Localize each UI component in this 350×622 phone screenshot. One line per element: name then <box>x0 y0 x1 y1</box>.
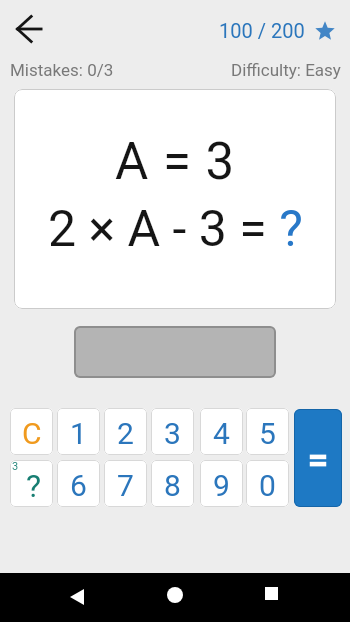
staticText: ? <box>26 467 42 505</box>
button[interactable]: 9 <box>200 460 243 507</box>
staticText: 0 <box>259 468 276 503</box>
button[interactable] <box>74 326 276 378</box>
button[interactable]: C <box>10 408 53 455</box>
button[interactable]: 2 <box>104 408 147 455</box>
button[interactable]: 5 <box>246 408 289 455</box>
staticText: 4 <box>213 416 230 451</box>
button[interactable]: 4 <box>200 408 243 455</box>
button[interactable]: 8 <box>151 460 194 507</box>
staticText: C <box>22 416 42 451</box>
staticText: 2 <box>117 416 134 451</box>
button[interactable]: ? <box>10 460 53 507</box>
button[interactable] <box>13 12 47 46</box>
button[interactable] <box>66 587 86 607</box>
staticText: 100 / 200 <box>219 19 305 42</box>
button[interactable] <box>294 409 342 507</box>
button[interactable]: 7 <box>104 460 147 507</box>
staticText: 6 <box>70 468 87 503</box>
staticText: 7 <box>117 468 134 503</box>
staticText: 9 <box>213 468 230 503</box>
button[interactable]: 6 <box>57 460 100 507</box>
button[interactable]: 0 <box>246 460 289 507</box>
button[interactable]: 3 <box>151 408 194 455</box>
button[interactable] <box>167 587 183 603</box>
staticText: 8 <box>164 468 181 503</box>
staticText: 3 <box>164 416 181 451</box>
staticText: 1 <box>70 416 87 451</box>
staticText: 2 × A - 3 = ? <box>48 200 303 259</box>
staticText: 3 <box>12 460 19 473</box>
staticText: A = 3 <box>115 132 236 192</box>
button[interactable]: 1 <box>57 408 100 455</box>
staticText: Difficulty: Easy <box>231 60 341 80</box>
staticText: 5 <box>259 416 276 451</box>
staticText: Mistakes: 0/3 <box>10 60 114 80</box>
